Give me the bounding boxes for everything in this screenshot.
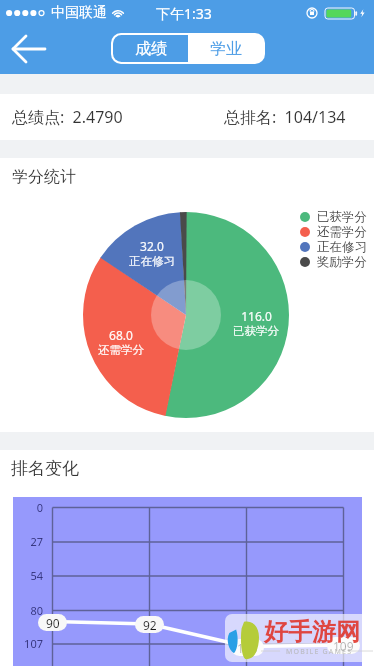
staticText: 好手游网	[264, 617, 360, 647]
staticText: 已获学分	[233, 324, 279, 338]
staticText: 54	[8, 568, 43, 583]
staticText: 正在修习	[317, 239, 367, 254]
staticText: 排名变化	[11, 458, 79, 479]
staticText: 还需学分	[98, 343, 144, 357]
staticText: 116.0	[241, 308, 272, 324]
staticText: MOBILE GAMES	[286, 647, 353, 657]
staticText: 中国联通	[51, 4, 107, 22]
staticText: 总排名: 104/134	[224, 106, 346, 128]
staticText: 107	[8, 636, 43, 651]
staticText: 80	[8, 603, 43, 618]
button[interactable]: 学业	[188, 35, 263, 62]
staticText: 109	[333, 638, 354, 654]
staticText: 27	[8, 534, 43, 549]
staticText: 还需学分	[317, 224, 367, 239]
staticText: 110	[237, 640, 258, 656]
staticText: 90	[46, 615, 60, 631]
staticText: 学分统计	[12, 167, 76, 187]
staticText: 68.0	[109, 327, 133, 343]
staticText: 成绩	[135, 39, 167, 59]
button[interactable]: 成绩	[113, 35, 188, 62]
staticText: 32.0	[140, 238, 164, 254]
staticText: 下午1:33	[156, 4, 212, 23]
staticText: 奖励学分	[317, 254, 367, 269]
staticText: 学业	[210, 39, 242, 59]
staticText: 正在修习	[129, 254, 175, 268]
staticText: 0	[8, 500, 43, 515]
button[interactable]: Back	[6, 30, 50, 68]
staticText: 已获学分	[317, 209, 367, 224]
staticText: 总绩点: 2.4790	[12, 106, 123, 128]
staticText: 92	[143, 617, 157, 633]
